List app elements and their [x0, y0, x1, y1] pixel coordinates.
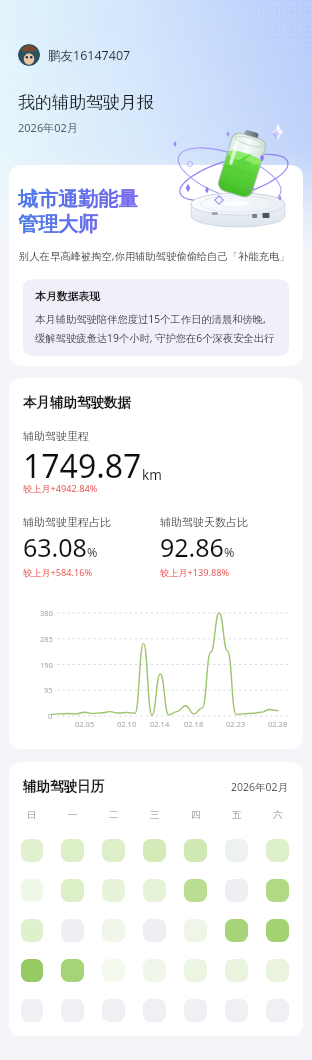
staticText: 一 [68, 809, 78, 821]
staticText: % [224, 544, 235, 561]
button[interactable] [102, 959, 125, 982]
staticText: 02.14 [150, 719, 170, 729]
button[interactable] [184, 999, 207, 1022]
button[interactable] [102, 919, 125, 942]
staticText: 0 [48, 711, 53, 721]
button[interactable] [266, 879, 289, 902]
button[interactable] [21, 879, 43, 902]
staticText: % [87, 544, 98, 561]
staticText: 鹏友16147407 [48, 47, 131, 64]
staticText: 02.23 [226, 719, 246, 729]
button[interactable] [102, 839, 125, 862]
staticText: 63.08 [23, 530, 87, 564]
staticText: 辅助驾驶里程 [23, 429, 89, 443]
button[interactable] [184, 839, 207, 862]
button[interactable] [61, 959, 84, 982]
button[interactable] [266, 959, 289, 982]
staticText: 本月辅助驾驶陪伴您度过15个工作日的清晨和傍晚, 缓解驾驶疲惫达19个小时, 守… [35, 312, 275, 345]
button[interactable] [143, 879, 166, 902]
button[interactable] [184, 959, 207, 982]
button[interactable] [143, 839, 166, 862]
staticText: 五 [232, 809, 242, 821]
staticText: 别人在早高峰被掏空,你用辅助驾驶偷偷给自己「补能充电」 [19, 249, 290, 263]
staticText: 02.10 [117, 719, 137, 729]
button[interactable] [21, 959, 43, 982]
button[interactable] [143, 999, 166, 1022]
staticText: 本月数据表现 [35, 290, 100, 304]
staticText: 辅助驾驶日历 [23, 778, 104, 795]
staticText: km [142, 466, 162, 484]
button[interactable] [225, 959, 248, 982]
staticText: 2026年02月 [231, 780, 289, 794]
button[interactable] [143, 919, 166, 942]
button[interactable] [21, 919, 43, 942]
staticText: 02.05 [75, 719, 95, 729]
button[interactable] [266, 839, 289, 862]
staticText: 较上月+139.88% [160, 566, 230, 579]
staticText: 380 [40, 608, 53, 618]
button[interactable] [21, 839, 43, 862]
staticText: 92.86 [160, 530, 224, 564]
staticText: 四 [191, 809, 201, 821]
staticText: 辅助驾驶里程占比 [23, 515, 111, 529]
staticText: 管理大师 [18, 212, 98, 237]
staticText: 二 [109, 809, 119, 821]
staticText: 02.28 [268, 719, 288, 729]
staticText: 2026年02月 [18, 120, 78, 135]
button[interactable]: 鹏友16147407 [18, 44, 131, 66]
staticText: 本月辅助驾驶数据 [23, 394, 131, 411]
staticText: 城市通勤能量 [18, 187, 138, 212]
button[interactable] [143, 959, 166, 982]
button[interactable] [266, 999, 289, 1022]
staticText: 六 [273, 809, 283, 821]
button[interactable] [102, 879, 125, 902]
staticText: 较上月+4942.84% [23, 482, 98, 495]
button[interactable] [266, 919, 289, 942]
staticText: 1749.87 [23, 444, 142, 488]
button[interactable] [225, 999, 248, 1022]
staticText: 02.18 [184, 719, 204, 729]
staticText: 我的辅助驾驶月报 [18, 92, 154, 113]
button[interactable] [61, 999, 84, 1022]
staticText: 日 [27, 809, 37, 821]
staticText: 95 [44, 685, 53, 695]
staticText: 285 [40, 634, 53, 644]
button[interactable] [102, 999, 125, 1022]
staticText: 三 [150, 809, 160, 821]
button[interactable] [21, 999, 43, 1022]
button[interactable] [225, 879, 248, 902]
staticText: 较上月+584.16% [23, 566, 93, 579]
staticText: 辅助驾驶天数占比 [160, 515, 248, 529]
button[interactable] [184, 879, 207, 902]
button[interactable] [184, 919, 207, 942]
button[interactable] [61, 879, 84, 902]
button[interactable] [225, 919, 248, 942]
staticText: 190 [40, 660, 53, 670]
button[interactable] [61, 919, 84, 942]
button[interactable] [61, 839, 84, 862]
button[interactable] [225, 839, 248, 862]
